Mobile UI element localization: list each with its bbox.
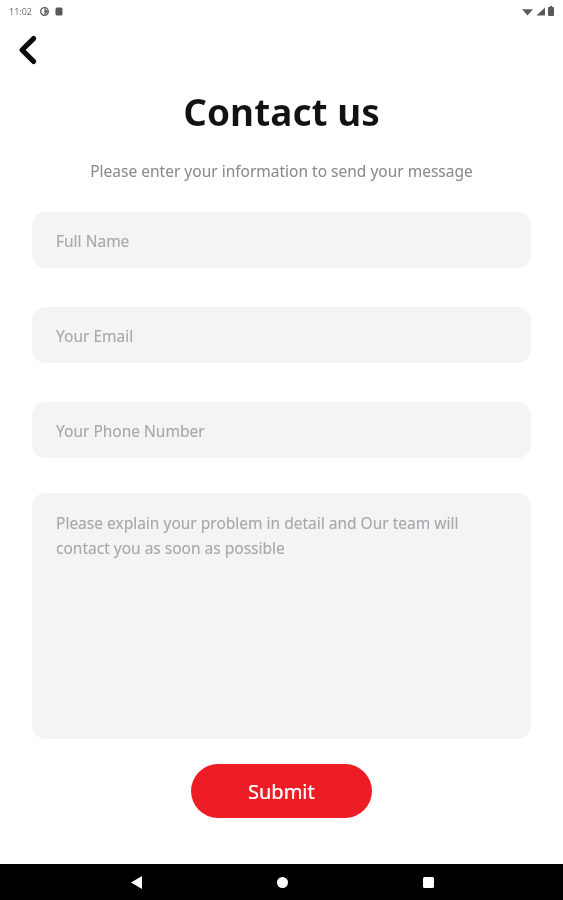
- button[interactable]: Home: [260, 864, 304, 900]
- staticText: Your Email: [56, 325, 134, 346]
- button[interactable]: Back: [114, 864, 158, 900]
- staticText: 11:02: [9, 5, 33, 17]
- staticText: Submit: [248, 778, 315, 805]
- staticText: Contact us: [0, 86, 563, 136]
- button[interactable]: Full Name: [32, 212, 531, 268]
- button[interactable]: Your Email: [32, 307, 531, 363]
- staticText: Please enter your information to send yo…: [16, 160, 547, 181]
- button[interactable]: Submit: [191, 764, 372, 818]
- button[interactable]: Please explain your problem in detail an…: [32, 493, 531, 739]
- button[interactable]: Your Phone Number: [32, 402, 531, 458]
- button[interactable]: Back: [4, 26, 52, 74]
- staticText: Please explain your problem in detail an…: [56, 512, 515, 558]
- staticText: Your Phone Number: [56, 420, 205, 441]
- staticText: Full Name: [56, 230, 130, 251]
- button[interactable]: Recent apps: [406, 864, 450, 900]
